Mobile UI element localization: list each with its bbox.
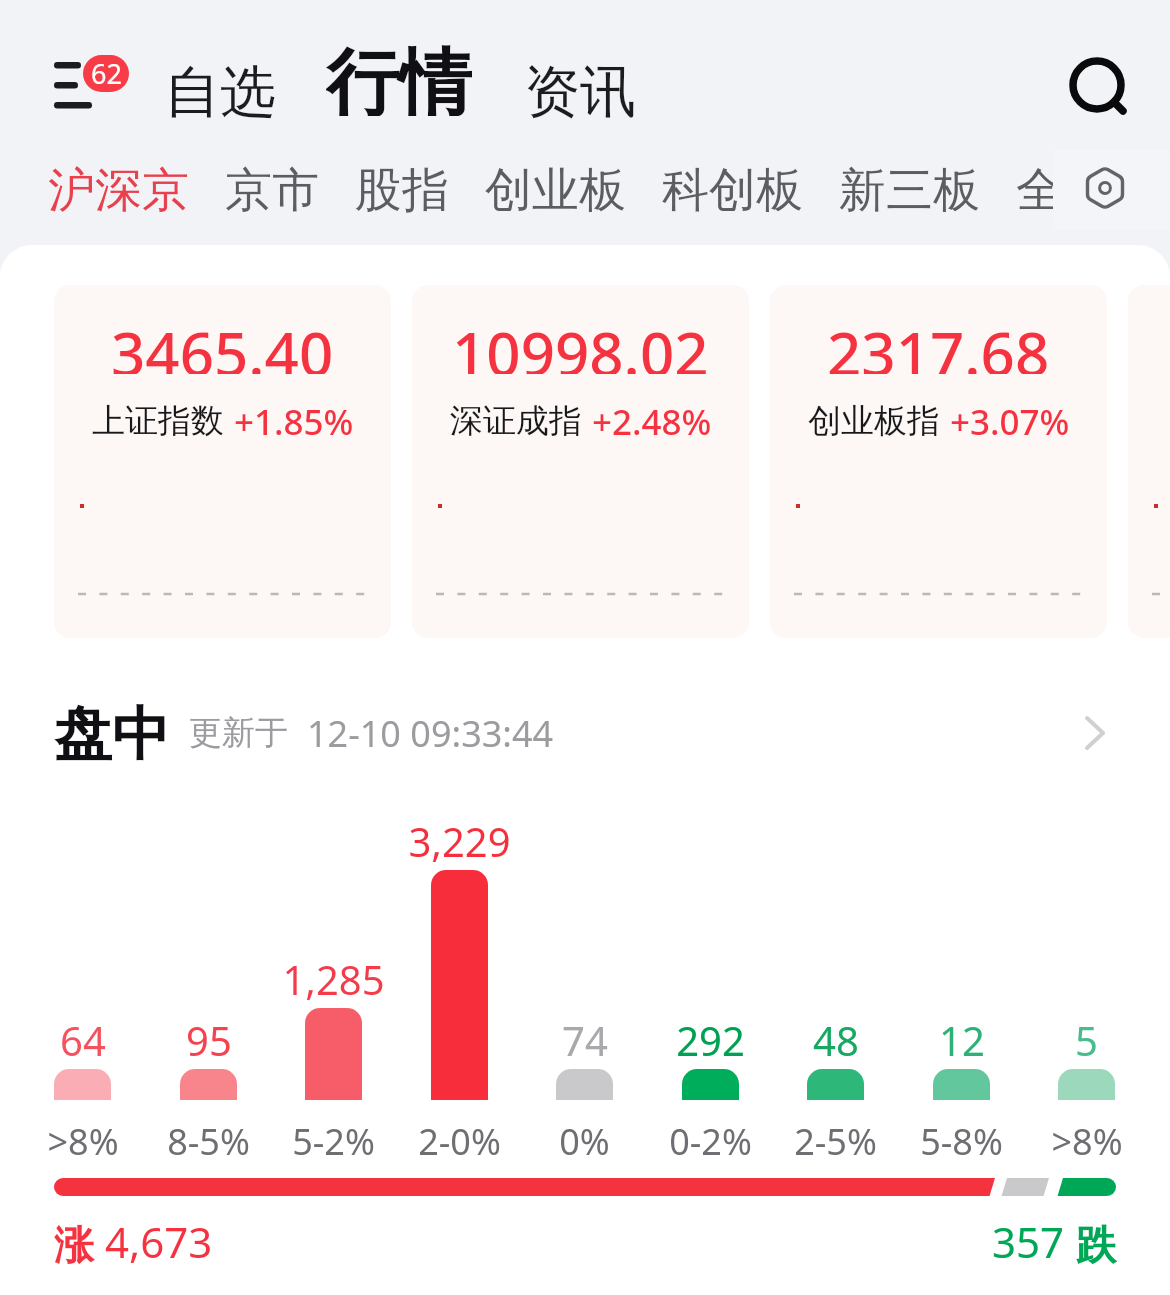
button[interactable]: 股指	[355, 161, 449, 220]
staticText: 沪深京	[48, 161, 189, 220]
staticText: 深证成指	[450, 400, 582, 442]
button[interactable]: Menu	[46, 54, 102, 116]
staticText: 股指	[355, 161, 449, 220]
button[interactable]: Search	[1059, 47, 1135, 123]
button[interactable]: 行情	[326, 38, 472, 116]
staticText: 0-2%	[669, 1117, 752, 1163]
button[interactable]: Market settings	[1084, 167, 1126, 213]
staticText: 京市	[225, 161, 319, 220]
staticText: 48	[813, 1013, 859, 1063]
button[interactable]: 4012.33	[1128, 285, 1170, 638]
staticText: 新三板	[839, 161, 980, 220]
staticText: 涨	[54, 1220, 94, 1270]
staticText: 62	[91, 55, 122, 92]
staticText: 3,229	[408, 814, 511, 864]
button[interactable]: 3465.40	[54, 285, 391, 638]
staticText: 1,285	[282, 952, 385, 1002]
staticText: 2-5%	[794, 1117, 877, 1163]
staticText: 0%	[559, 1117, 610, 1163]
staticText: 3465.40	[111, 312, 334, 374]
button[interactable]: 京市	[225, 161, 319, 220]
staticText: 357	[992, 1213, 1065, 1270]
button[interactable]: 资讯	[524, 57, 636, 128]
staticText: 全	[1016, 161, 1063, 220]
staticText: 12	[939, 1013, 985, 1063]
staticText: 95	[186, 1013, 232, 1063]
staticText: 4,673	[105, 1213, 213, 1270]
staticText: 292	[676, 1013, 745, 1063]
staticText: +2.48%	[592, 398, 712, 444]
staticText: 12-10 09:33:44	[307, 709, 554, 758]
button[interactable]: 科创板	[662, 161, 803, 220]
staticText: +3.07%	[950, 398, 1070, 444]
staticText: 2317.68	[827, 312, 1050, 374]
staticText: 盘中	[54, 698, 170, 768]
button[interactable]: 盘中	[54, 698, 1116, 768]
button[interactable]: 2317.68	[770, 285, 1107, 638]
staticText: 创业板指	[808, 400, 940, 442]
staticText: 5-2%	[292, 1117, 375, 1163]
staticText: >8%	[47, 1117, 119, 1163]
staticText: 64	[60, 1013, 106, 1063]
staticText: 2-0%	[418, 1117, 501, 1163]
button[interactable]: 沪深京	[48, 161, 189, 220]
button[interactable]: 创业板	[485, 161, 626, 220]
staticText: +1.85%	[234, 398, 354, 444]
staticText: 跌	[1076, 1220, 1116, 1270]
staticText: 74	[562, 1013, 608, 1063]
button[interactable]: 自选	[164, 57, 276, 128]
button[interactable]: 新三板	[839, 161, 980, 220]
staticText: 5	[1075, 1013, 1098, 1063]
staticText: 5-8%	[920, 1117, 1003, 1163]
staticText: 8-5%	[167, 1117, 250, 1163]
staticText: 更新于	[189, 712, 288, 754]
button[interactable]: 全	[1016, 161, 1063, 220]
button[interactable]: 10998.02	[412, 285, 749, 638]
staticText: 上证指数	[92, 400, 224, 442]
staticText: 创业板	[485, 161, 626, 220]
staticText: 10998.02	[452, 312, 709, 374]
staticText: >8%	[1051, 1117, 1123, 1163]
staticText: 科创板	[662, 161, 803, 220]
